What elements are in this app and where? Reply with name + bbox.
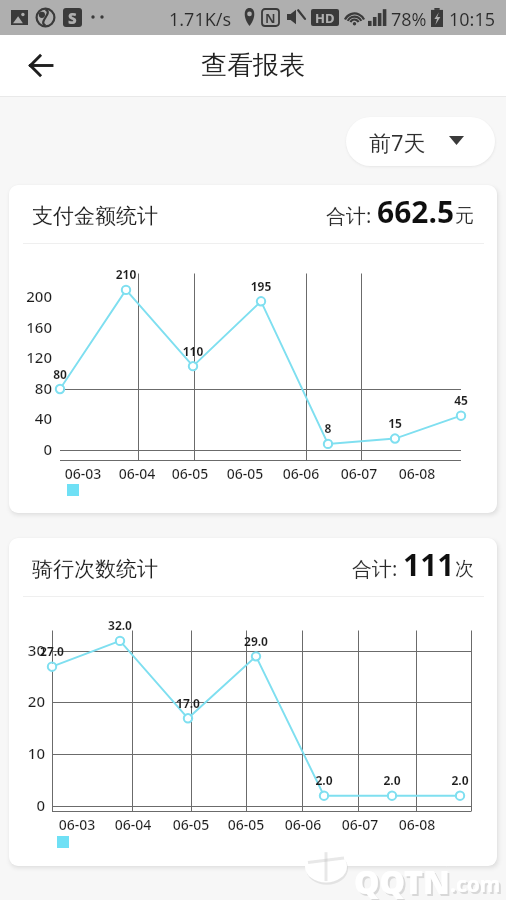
staticText: 2.0	[430, 772, 490, 788]
staticText: 111	[403, 544, 455, 585]
staticText: QQTN	[356, 862, 452, 900]
staticText: 2.0	[294, 772, 354, 788]
staticText: 查看报表	[201, 49, 305, 82]
staticText: 662.5	[377, 191, 455, 232]
staticText: 210	[96, 266, 156, 282]
staticText: 06-05	[210, 464, 280, 483]
staticText: 15	[365, 415, 425, 431]
staticText: 支付金额统计	[32, 203, 158, 229]
staticText: 06-03	[48, 464, 118, 483]
staticText: 元	[455, 204, 474, 228]
staticText: HD	[315, 9, 335, 26]
staticText: 06-08	[382, 815, 452, 834]
staticText: 29.0	[226, 633, 286, 649]
staticText: 200	[9, 286, 52, 306]
staticText: 前7天	[369, 127, 426, 157]
staticText: 110	[163, 343, 223, 359]
staticText: 06-04	[102, 464, 172, 483]
staticText: 06-05	[156, 815, 226, 834]
staticText: 27.0	[22, 643, 82, 659]
staticText: 合计:	[352, 555, 403, 582]
staticText: 78%	[391, 7, 427, 32]
staticText: 120	[9, 347, 52, 367]
staticText: 195	[231, 278, 291, 294]
staticText: 20	[9, 691, 45, 711]
staticText: 80	[9, 378, 52, 398]
staticText: 06-07	[325, 815, 395, 834]
staticText: 10	[9, 743, 45, 763]
staticText: 06-03	[42, 815, 112, 834]
staticText: 32.0	[90, 617, 150, 633]
staticText: 1.71K/s	[169, 7, 232, 32]
staticText: 30	[9, 640, 45, 660]
staticText: 骑行次数统计	[32, 556, 158, 582]
button[interactable]: 骑行次数统计	[9, 538, 497, 866]
staticText: 06-06	[266, 464, 336, 483]
staticText: 17.0	[158, 695, 218, 711]
staticText: 06-08	[382, 464, 452, 483]
staticText: 8	[298, 420, 358, 436]
staticText: 06-05	[211, 815, 281, 834]
staticText: 06-05	[155, 464, 225, 483]
staticText: 40	[9, 408, 52, 428]
staticText: 2.0	[362, 772, 422, 788]
staticText: S	[68, 8, 77, 27]
staticText: 10:15	[449, 7, 496, 32]
staticText: QQTN	[354, 860, 450, 900]
staticText: .com	[452, 872, 503, 900]
button[interactable]: Back	[12, 42, 68, 89]
staticText: 合计:	[326, 202, 377, 229]
staticText: 腾牛网	[445, 850, 490, 869]
staticText: 45	[431, 392, 491, 408]
button[interactable]: 支付金额统计	[9, 185, 497, 513]
button[interactable]: 前7天	[346, 117, 495, 166]
staticText: 160	[9, 317, 52, 337]
staticText: 0	[9, 795, 45, 815]
staticText: 06-06	[268, 815, 338, 834]
staticText: 0	[9, 439, 52, 459]
staticText: 80	[30, 366, 90, 382]
staticText: 06-07	[324, 464, 394, 483]
staticText: 06-04	[98, 815, 168, 834]
staticText: .com	[450, 870, 501, 899]
staticText: N	[265, 9, 276, 26]
staticText: 次	[455, 557, 474, 581]
